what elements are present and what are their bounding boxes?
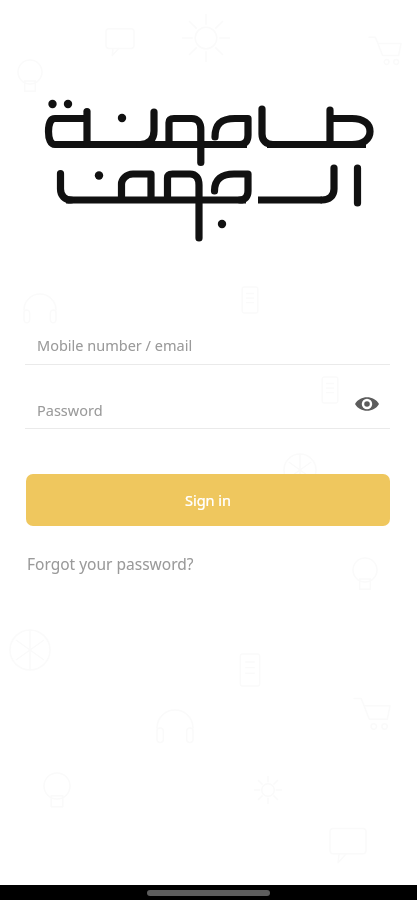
button[interactable]: Show password [352, 389, 381, 418]
button[interactable]: Sign in [26, 474, 390, 526]
staticText: Mobile number / email [37, 335, 193, 355]
staticText: Sign in [185, 490, 232, 510]
staticText: Forgot your password? [27, 553, 194, 574]
button[interactable]: Forgot your password? [27, 553, 194, 574]
staticText: Password [37, 400, 103, 420]
